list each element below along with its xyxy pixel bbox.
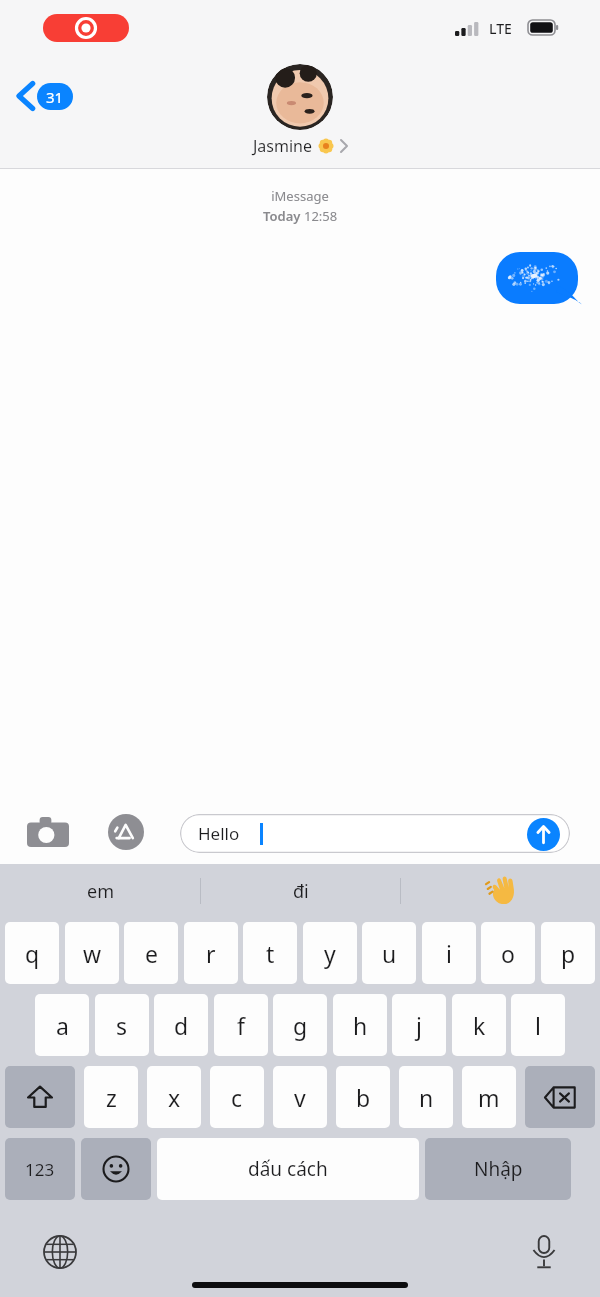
staticText: Jasmine: [253, 135, 313, 157]
staticText: d: [174, 1010, 189, 1041]
button[interactable]: iMessage Apps: [100, 812, 152, 852]
button[interactable]: p: [541, 922, 595, 984]
staticText: o: [501, 938, 515, 969]
staticText: z: [106, 1082, 117, 1113]
button[interactable]: Back to conversations: [14, 74, 77, 118]
staticText: m: [478, 1082, 500, 1113]
button[interactable]: m: [462, 1066, 516, 1128]
button[interactable]: l: [511, 994, 565, 1056]
button[interactable]: d: [154, 994, 208, 1056]
button[interactable]: k: [452, 994, 506, 1056]
staticText: g: [293, 1010, 308, 1041]
button[interactable]: g: [273, 994, 327, 1056]
button[interactable]: i: [422, 922, 476, 984]
button[interactable]: em: [0, 864, 200, 918]
staticText: dấu cách: [248, 1156, 328, 1182]
button[interactable]: f: [214, 994, 268, 1056]
staticText: x: [168, 1082, 181, 1113]
button[interactable]: Emoji keyboard: [81, 1138, 151, 1200]
staticText: s: [116, 1010, 128, 1041]
staticText: v: [294, 1082, 306, 1113]
staticText: y: [324, 938, 336, 969]
staticText: e: [145, 938, 158, 969]
button[interactable]: x: [147, 1066, 201, 1128]
staticText: LTE: [489, 19, 512, 38]
button[interactable]: Nhập: [425, 1138, 571, 1200]
staticText: 31: [46, 87, 64, 107]
button[interactable]: h: [333, 994, 387, 1056]
staticText: Today: [263, 207, 304, 225]
button[interactable]: 123: [5, 1138, 75, 1200]
button[interactable]: Delete: [525, 1066, 595, 1128]
staticText: n: [419, 1082, 434, 1113]
staticText: k: [473, 1010, 486, 1041]
button[interactable]: Waving hand emoji: [401, 864, 600, 918]
staticText: Hello: [198, 822, 240, 845]
button[interactable]: Change keyboard: [32, 1224, 88, 1280]
button[interactable]: b: [336, 1066, 390, 1128]
staticText: w: [83, 938, 102, 969]
staticText: em: [87, 879, 114, 904]
staticText: i: [446, 938, 452, 969]
staticText: p: [561, 938, 576, 969]
staticText: r: [206, 938, 216, 969]
button[interactable]: c: [210, 1066, 264, 1128]
button[interactable]: Invisible ink message: [496, 252, 582, 304]
button[interactable]: Camera: [20, 812, 76, 852]
button[interactable]: j: [392, 994, 446, 1056]
button[interactable]: Message input field: [180, 814, 570, 853]
staticText: u: [382, 938, 397, 969]
staticText: t: [266, 938, 275, 969]
staticText: h: [353, 1010, 368, 1041]
button[interactable]: o: [481, 922, 535, 984]
button[interactable]: u: [362, 922, 416, 984]
staticText: a: [56, 1010, 69, 1041]
staticText: j: [416, 1010, 422, 1041]
button[interactable]: y: [303, 922, 357, 984]
staticText: c: [231, 1082, 243, 1113]
staticText: l: [535, 1010, 541, 1041]
button[interactable]: q: [5, 922, 59, 984]
button[interactable]: đi: [201, 864, 400, 918]
button[interactable]: z: [84, 1066, 138, 1128]
button[interactable]: r: [184, 922, 238, 984]
button[interactable]: v: [273, 1066, 327, 1128]
button[interactable]: dấu cách: [157, 1138, 419, 1200]
staticText: 12:58: [304, 207, 338, 225]
button[interactable]: Shift: [5, 1066, 75, 1128]
button[interactable]: a: [35, 994, 89, 1056]
button[interactable]: s: [95, 994, 149, 1056]
button[interactable]: w: [65, 922, 119, 984]
staticText: iMessage: [0, 187, 600, 205]
button[interactable]: n: [399, 1066, 453, 1128]
staticText: q: [25, 938, 40, 969]
button[interactable]: Dictation: [516, 1224, 572, 1280]
staticText: Nhập: [474, 1156, 523, 1182]
button[interactable]: t: [243, 922, 297, 984]
staticText: đi: [293, 879, 309, 904]
staticText: f: [237, 1010, 245, 1041]
staticText: b: [356, 1082, 371, 1113]
staticText: 123: [25, 1158, 55, 1181]
button[interactable]: Send: [527, 818, 560, 851]
button[interactable]: Jasmine: [0, 64, 600, 157]
button[interactable]: e: [124, 922, 178, 984]
button[interactable]: Recording indicator: [43, 14, 129, 42]
